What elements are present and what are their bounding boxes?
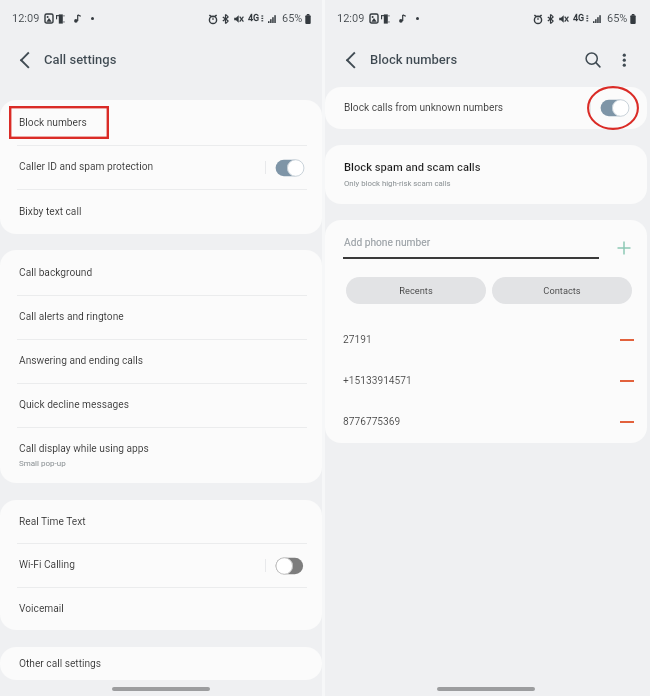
button[interactable]: +15133914571 <box>325 360 647 402</box>
button[interactable]: Wi-Fi Calling <box>0 543 322 587</box>
button[interactable]: Block calls from unknown numbers <box>325 87 647 129</box>
button[interactable]: Contacts <box>492 277 632 304</box>
button[interactable]: Remove 27191 <box>616 329 638 351</box>
staticText: Answering and ending calls <box>19 355 144 367</box>
button[interactable]: Bixby text call <box>0 189 322 234</box>
button[interactable]: Switch on <box>275 159 305 177</box>
staticText: Quick decline messages <box>19 399 129 411</box>
staticText: +15133914571 <box>343 375 412 387</box>
button[interactable]: 27191 <box>325 319 647 361</box>
staticText: Block numbers <box>370 52 458 67</box>
staticText: Other call settings <box>19 658 102 670</box>
button[interactable]: More options <box>610 45 638 73</box>
staticText: Call display while using apps <box>19 443 149 455</box>
button[interactable]: Block numbers <box>0 100 322 145</box>
staticText: Call background <box>19 267 93 279</box>
button[interactable]: Navigate up <box>12 48 36 72</box>
staticText: Bixby text call <box>19 206 82 218</box>
button[interactable]: Real Time Text <box>0 500 322 543</box>
button[interactable]: Call background <box>0 250 322 295</box>
staticText: Real Time Text <box>19 516 86 528</box>
staticText: Contacts <box>543 285 581 296</box>
button[interactable]: Switch off <box>275 557 305 575</box>
staticText: Block calls from unknown numbers <box>344 102 504 114</box>
staticText: 27191 <box>343 334 372 346</box>
button[interactable]: Block spam and scam calls <box>325 145 647 204</box>
button[interactable]: 8776775369 <box>325 401 647 443</box>
button[interactable]: Add number <box>612 236 636 260</box>
staticText: 12:09 <box>337 12 365 25</box>
button[interactable]: Caller ID and spam protection <box>0 145 322 189</box>
staticText: Add phone number <box>344 237 431 249</box>
button[interactable]: Remove 8776775369 <box>616 411 638 433</box>
button[interactable]: Call display while using apps <box>0 427 322 483</box>
staticText: Block spam and scam calls <box>344 161 481 174</box>
staticText: Call settings <box>44 52 117 67</box>
staticText: 65% <box>282 12 303 25</box>
button[interactable]: Quick decline messages <box>0 383 322 427</box>
staticText: Wi-Fi Calling <box>19 559 75 571</box>
staticText: 12:09 <box>12 12 40 25</box>
staticText: Call alerts and ringtone <box>19 311 124 323</box>
button[interactable]: Voicemail <box>0 587 322 630</box>
button[interactable]: Navigate up <box>338 48 362 72</box>
staticText: Caller ID and spam protection <box>19 161 154 173</box>
staticText: 8776775369 <box>343 416 401 428</box>
button[interactable]: Other call settings <box>0 647 322 680</box>
staticText: 4G <box>573 13 585 24</box>
staticText: Only block high-risk scam calls <box>344 179 451 188</box>
staticText: Voicemail <box>19 603 64 615</box>
staticText: Small pop-up <box>19 459 66 468</box>
button[interactable]: Search <box>578 45 606 73</box>
button[interactable]: Switch on <box>600 99 630 117</box>
staticText: Block numbers <box>19 117 87 129</box>
staticText: Recents <box>399 285 433 296</box>
button[interactable]: Answering and ending calls <box>0 339 322 383</box>
button[interactable]: Remove +15133914571 <box>616 370 638 392</box>
button[interactable]: Call alerts and ringtone <box>0 295 322 339</box>
staticText: 65% <box>607 12 628 25</box>
staticText: 4G <box>248 13 260 24</box>
button[interactable]: Recents <box>346 277 486 304</box>
